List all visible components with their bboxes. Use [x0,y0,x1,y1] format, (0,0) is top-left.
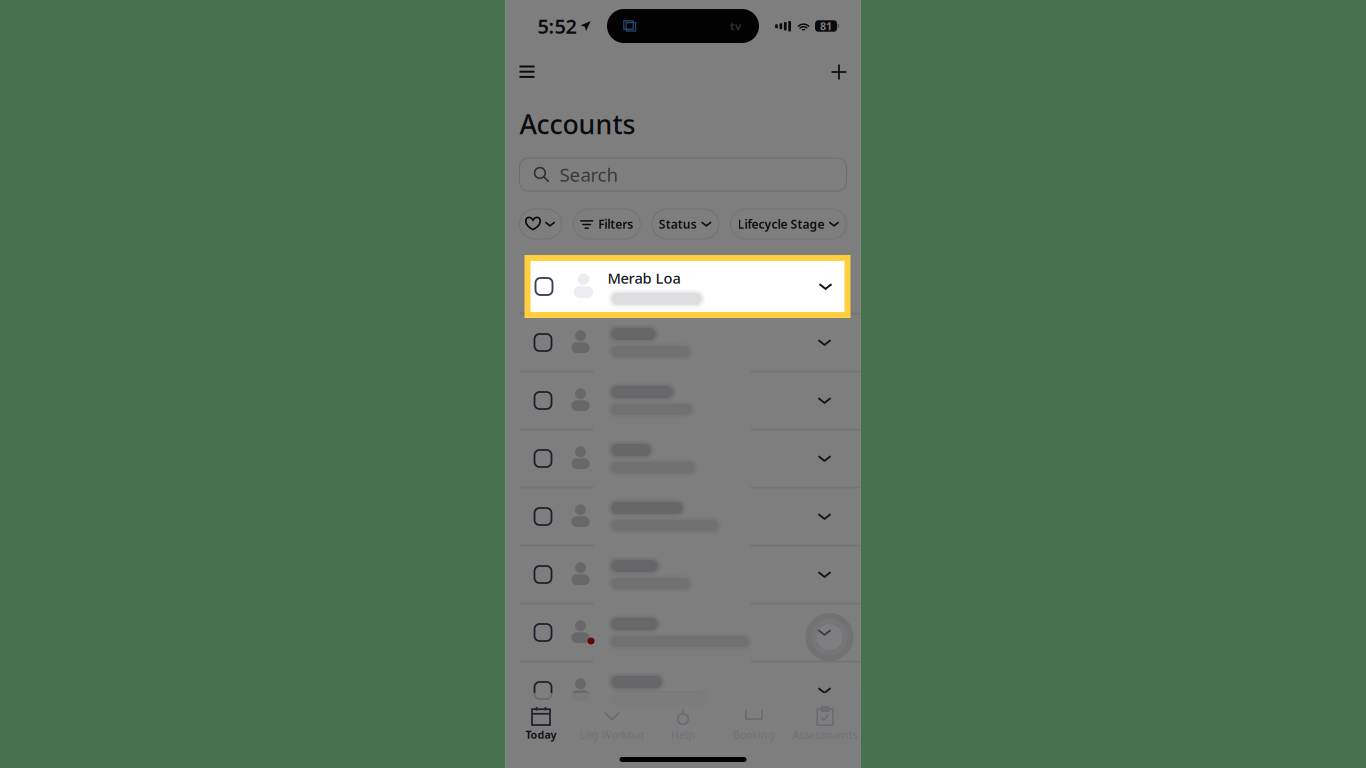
button[interactable]: Merab Loa [524,255,850,318]
button[interactable] [505,430,860,487]
staticText: tv [730,19,741,33]
staticText: Search [559,162,618,187]
staticText: Status [659,216,697,232]
button[interactable] [505,488,860,545]
button[interactable] [505,662,860,719]
button[interactable] [505,372,860,429]
staticText: Assessments [792,727,857,742]
button[interactable]: Status [652,209,719,239]
button[interactable]: Menu [510,56,543,87]
button[interactable]: Favorites filter [519,209,561,239]
staticText: Today [525,727,556,742]
button[interactable]: Lifecycle Stage [730,209,846,239]
staticText: Log Workout [579,727,644,742]
staticText: Merab Loa [607,268,680,288]
staticText: Filters [598,216,633,232]
button[interactable]: Log Workout [576,706,647,739]
staticText: Accounts [519,106,635,142]
staticText: Help [671,727,695,742]
button[interactable] [505,314,860,371]
staticText: Lifecycle Stage [737,216,824,232]
button[interactable]: Filters [573,209,640,239]
button[interactable] [505,256,860,313]
button[interactable] [505,546,860,603]
button[interactable]: Assessments [789,706,860,739]
staticText: Booking [733,727,775,742]
button[interactable] [505,604,860,661]
button[interactable]: Help [647,706,718,739]
button[interactable]: Today [505,706,576,739]
staticText: 5:52 [537,13,576,39]
staticText: 81 [820,19,832,33]
button[interactable]: Add [822,55,855,88]
button[interactable]: Booking [718,706,789,739]
